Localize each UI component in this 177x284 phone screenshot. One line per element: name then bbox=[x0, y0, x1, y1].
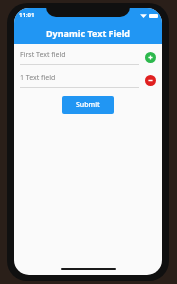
button[interactable]: Remove field bbox=[145, 75, 156, 86]
staticText: 1 Text field bbox=[20, 73, 56, 83]
button[interactable]: Add field bbox=[145, 52, 156, 63]
staticText: First Text field bbox=[20, 50, 66, 60]
button[interactable]: Submit bbox=[62, 96, 114, 114]
staticText: Submit bbox=[76, 100, 100, 110]
button[interactable]: First Text field bbox=[20, 50, 139, 65]
staticText: 11:01 bbox=[19, 11, 35, 19]
button[interactable]: 1 Text field bbox=[20, 73, 139, 88]
staticText: Dynamic Text Field bbox=[46, 27, 130, 39]
